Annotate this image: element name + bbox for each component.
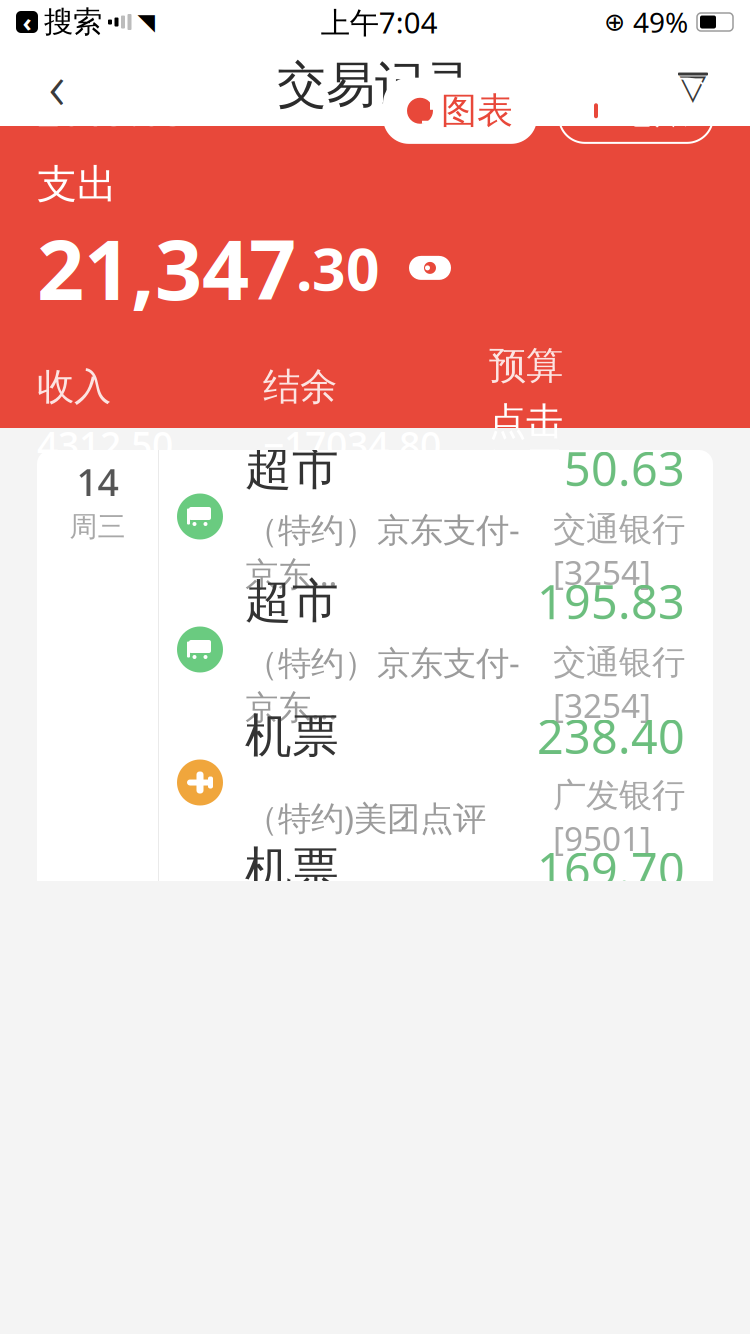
button[interactable]: 2019.03 bbox=[37, 80, 211, 141]
button[interactable]: 机票 bbox=[37, 716, 713, 849]
button[interactable]: 机票 bbox=[37, 849, 713, 982]
button[interactable]: 超市 bbox=[37, 583, 713, 716]
staticText: 21,347 bbox=[37, 213, 296, 323]
staticText: 收入 bbox=[37, 364, 111, 410]
button[interactable]: 返回 bbox=[22, 50, 92, 120]
staticText: 机票 bbox=[245, 707, 339, 764]
staticText: 记账 bbox=[617, 89, 689, 133]
button[interactable]: 记账 bbox=[559, 79, 713, 143]
staticText: 图表 bbox=[441, 89, 513, 133]
staticText: 广发银行[9501] bbox=[553, 775, 685, 860]
staticText: 预算 bbox=[489, 343, 563, 389]
staticText: 搜索 bbox=[44, 4, 102, 40]
staticText: 49% bbox=[633, 3, 688, 41]
staticText: 超市 bbox=[245, 440, 339, 497]
staticText: （特约）京东支付-京东… bbox=[245, 507, 520, 596]
staticText: ‹ bbox=[22, 5, 31, 39]
button[interactable]: 图表 bbox=[383, 78, 537, 144]
staticText: 机票 bbox=[245, 840, 339, 897]
staticText: ◥ bbox=[137, 9, 154, 35]
button[interactable]: 预算 bbox=[489, 343, 601, 490]
staticText: 上午7:04 bbox=[321, 2, 438, 41]
staticText: ▽ bbox=[679, 67, 706, 106]
button[interactable]: 筛选 bbox=[658, 50, 728, 120]
staticText: ‹ bbox=[48, 42, 65, 127]
staticText: 14 bbox=[76, 457, 118, 507]
button[interactable]: 14 bbox=[37, 450, 713, 583]
staticText: 195.83 bbox=[537, 570, 685, 632]
staticText: 超市 bbox=[245, 573, 339, 630]
staticText: 支出 bbox=[37, 160, 117, 209]
staticText: 2019.03 bbox=[37, 84, 186, 137]
staticText: 169.70 bbox=[537, 838, 685, 900]
staticText: 50.63 bbox=[564, 437, 685, 499]
staticText: ⊕ bbox=[604, 8, 625, 36]
staticText: 点击设置 bbox=[489, 399, 563, 490]
staticText: （特约）京东支付-京东… bbox=[245, 640, 520, 729]
staticText: .30 bbox=[296, 229, 380, 307]
staticText: 交易记录 bbox=[277, 55, 473, 115]
button[interactable]: 隐藏金额 bbox=[406, 248, 454, 288]
staticText: 交通银行[3254] bbox=[553, 509, 685, 594]
staticText: 4312.50 bbox=[37, 420, 173, 469]
staticText: 周三 bbox=[69, 510, 125, 544]
staticText: 交通银行[3254] bbox=[553, 642, 685, 727]
staticText: −17034.80 bbox=[263, 420, 441, 469]
staticText: 238.40 bbox=[537, 705, 685, 767]
staticText: （特约)美团点评 bbox=[245, 795, 486, 840]
staticText: 结余 bbox=[263, 364, 337, 410]
